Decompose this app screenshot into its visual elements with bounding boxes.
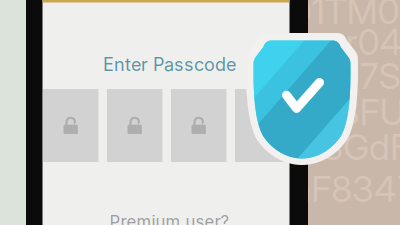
button[interactable]: Passcode digit — [43, 89, 98, 162]
staticText: 8FU — [338, 90, 400, 134]
staticText: nF834Y — [291, 167, 400, 211]
button[interactable]: Premium user? — [109, 212, 229, 225]
button[interactable]: Passcode digit — [171, 89, 226, 162]
staticText: Enter Passcode — [103, 54, 236, 75]
button[interactable]: Passcode digit — [235, 89, 290, 162]
staticText: 01TM04 — [289, 0, 400, 33]
staticText: ur04 — [325, 20, 400, 64]
button[interactable]: Passcode digit — [107, 89, 162, 162]
staticText: 7S — [359, 54, 400, 98]
staticText: Premium user? — [109, 212, 229, 225]
staticText: 8GdF — [322, 125, 400, 169]
